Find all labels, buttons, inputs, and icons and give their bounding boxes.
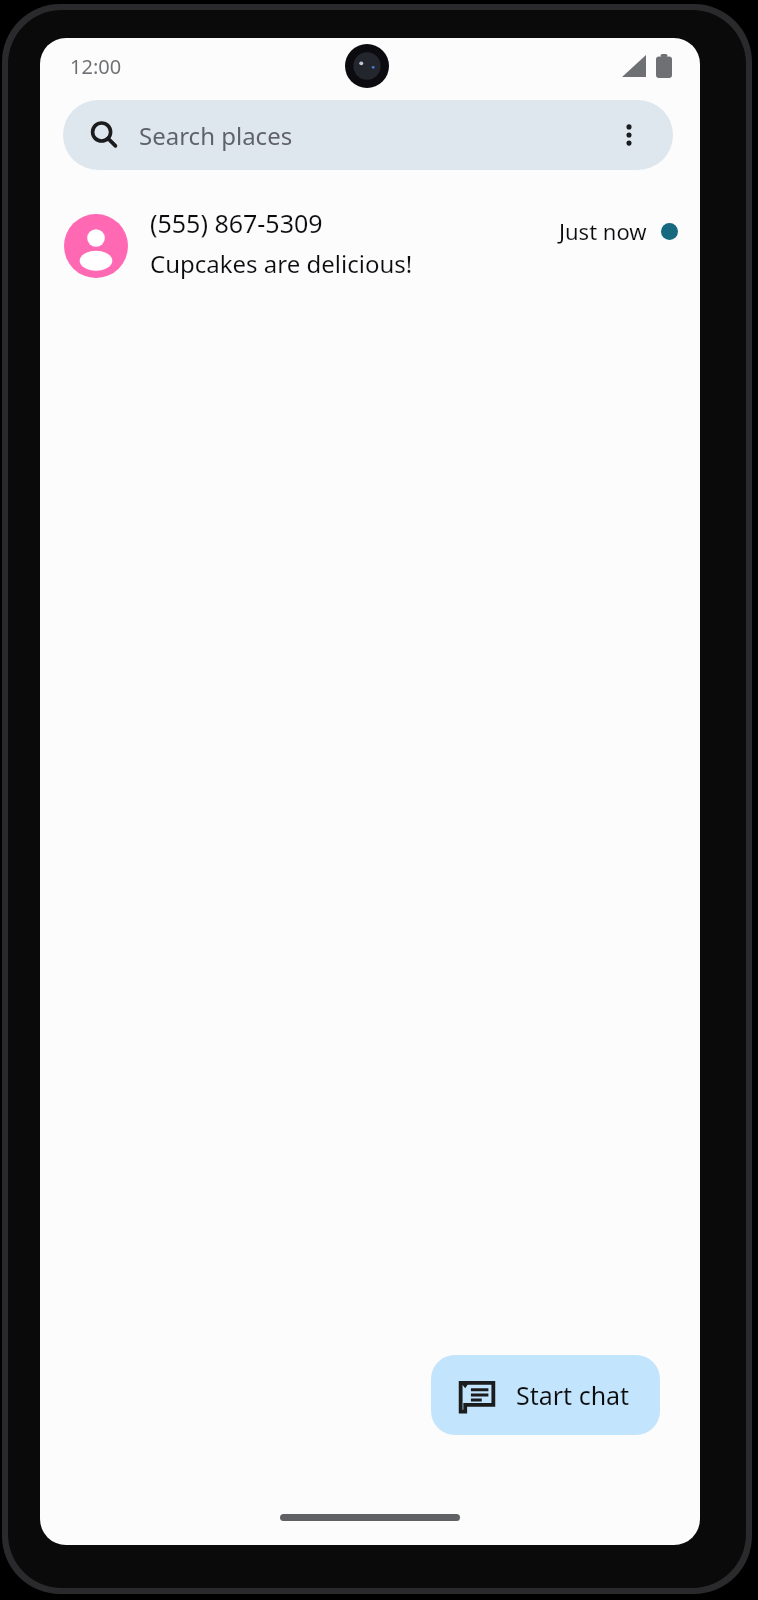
staticText: Search places bbox=[139, 119, 293, 152]
button[interactable]: (555) 867-5309 bbox=[40, 200, 700, 286]
button[interactable]: Search places bbox=[63, 100, 673, 170]
staticText: (555) 867-5309 bbox=[150, 206, 323, 240]
button[interactable]: Start chat bbox=[431, 1355, 660, 1435]
staticText: Cupcakes are delicious! bbox=[150, 247, 413, 280]
staticText: Start chat bbox=[516, 1378, 630, 1412]
staticText: Just now bbox=[559, 216, 647, 246]
staticText: 12:00 bbox=[70, 53, 122, 80]
button[interactable]: More options bbox=[607, 113, 651, 157]
